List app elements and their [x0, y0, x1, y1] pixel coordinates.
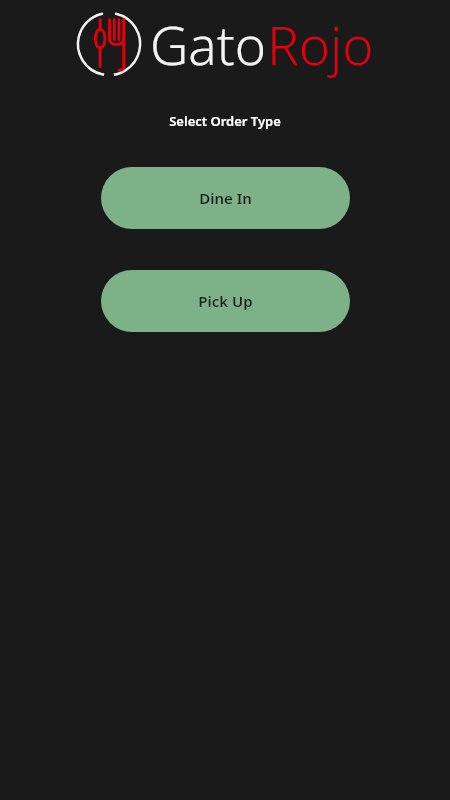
button[interactable]: Pick Up: [101, 270, 350, 332]
staticText: Rojo: [267, 8, 374, 80]
staticText: Gato: [150, 8, 267, 80]
staticText: Pick Up: [198, 291, 253, 311]
staticText: Dine In: [199, 188, 252, 208]
button[interactable]: Dine In: [101, 167, 350, 229]
other: GatoRojo logo: [76, 11, 142, 77]
staticText: Select Order Type: [169, 112, 281, 130]
